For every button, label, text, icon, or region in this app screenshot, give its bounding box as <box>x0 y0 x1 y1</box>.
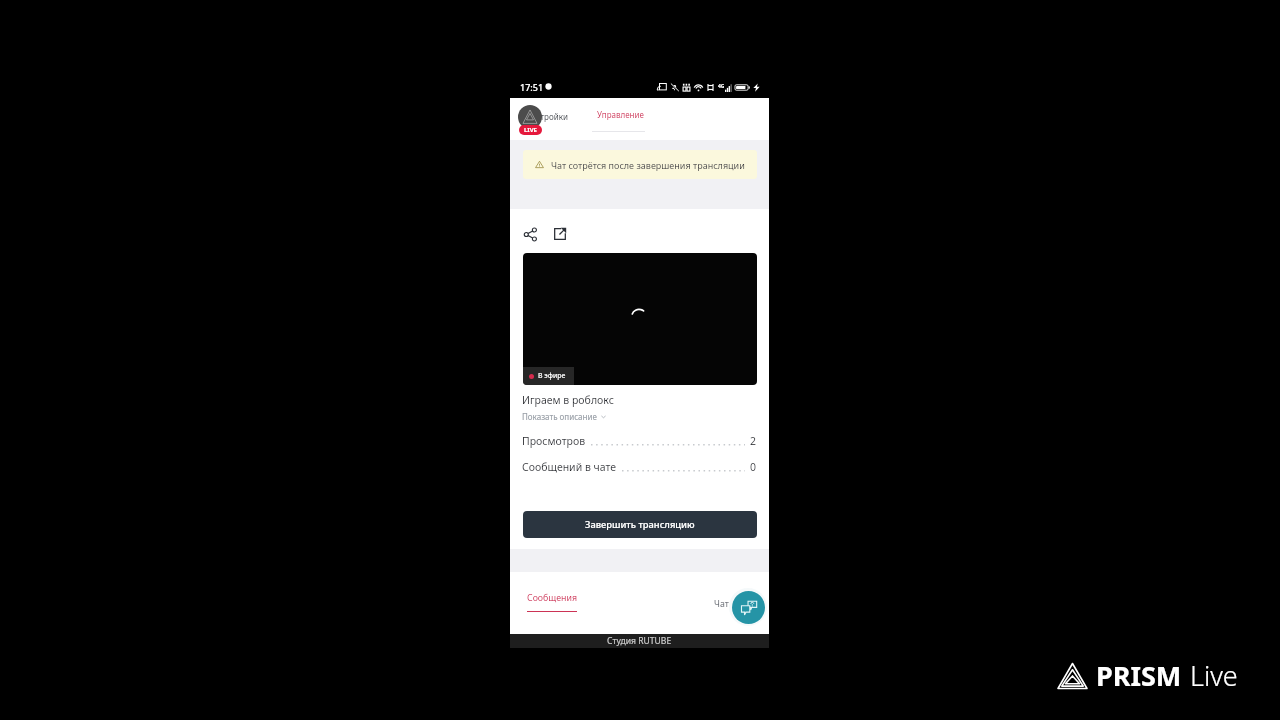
staticText: В эфире <box>538 371 566 381</box>
button[interactable]: Сообщения <box>523 584 582 610</box>
button[interactable]: Завершить трансляцию <box>523 511 757 538</box>
staticText: Чат <box>714 598 729 610</box>
button[interactable]: Profile <box>518 105 542 129</box>
button[interactable]: Показать описание <box>522 411 607 422</box>
staticText: 17:51 <box>520 81 544 93</box>
staticText: Настройки <box>526 111 568 122</box>
button[interactable]: Stream preview <box>523 253 757 385</box>
button[interactable]: Share <box>522 226 538 242</box>
staticText: PRISM <box>1096 657 1182 694</box>
staticText: Сообщений в чате <box>522 460 617 474</box>
staticText: Сообщения <box>527 592 578 604</box>
staticText: Завершить трансляцию <box>585 518 695 531</box>
button[interactable]: Open external <box>551 225 568 242</box>
staticText: 4G <box>718 83 725 90</box>
staticText: Чат сотрётся после завершения трансляции <box>551 159 745 171</box>
staticText: Показать описание <box>522 411 597 422</box>
button[interactable]: Настройки <box>524 105 570 127</box>
staticText: LIVE <box>524 126 537 134</box>
staticText: Управление <box>597 109 644 120</box>
button[interactable]: Чат <box>708 584 738 610</box>
staticText: Live <box>1190 657 1238 694</box>
staticText: Студия RUTUBE <box>607 635 672 647</box>
button[interactable]: New message <box>732 591 765 624</box>
staticText: 0 <box>750 460 757 474</box>
staticText: Играем в роблокс <box>522 393 614 407</box>
button[interactable]: Управление <box>590 105 650 132</box>
staticText: 2 <box>750 434 757 448</box>
staticText: Просмотров <box>522 434 586 448</box>
